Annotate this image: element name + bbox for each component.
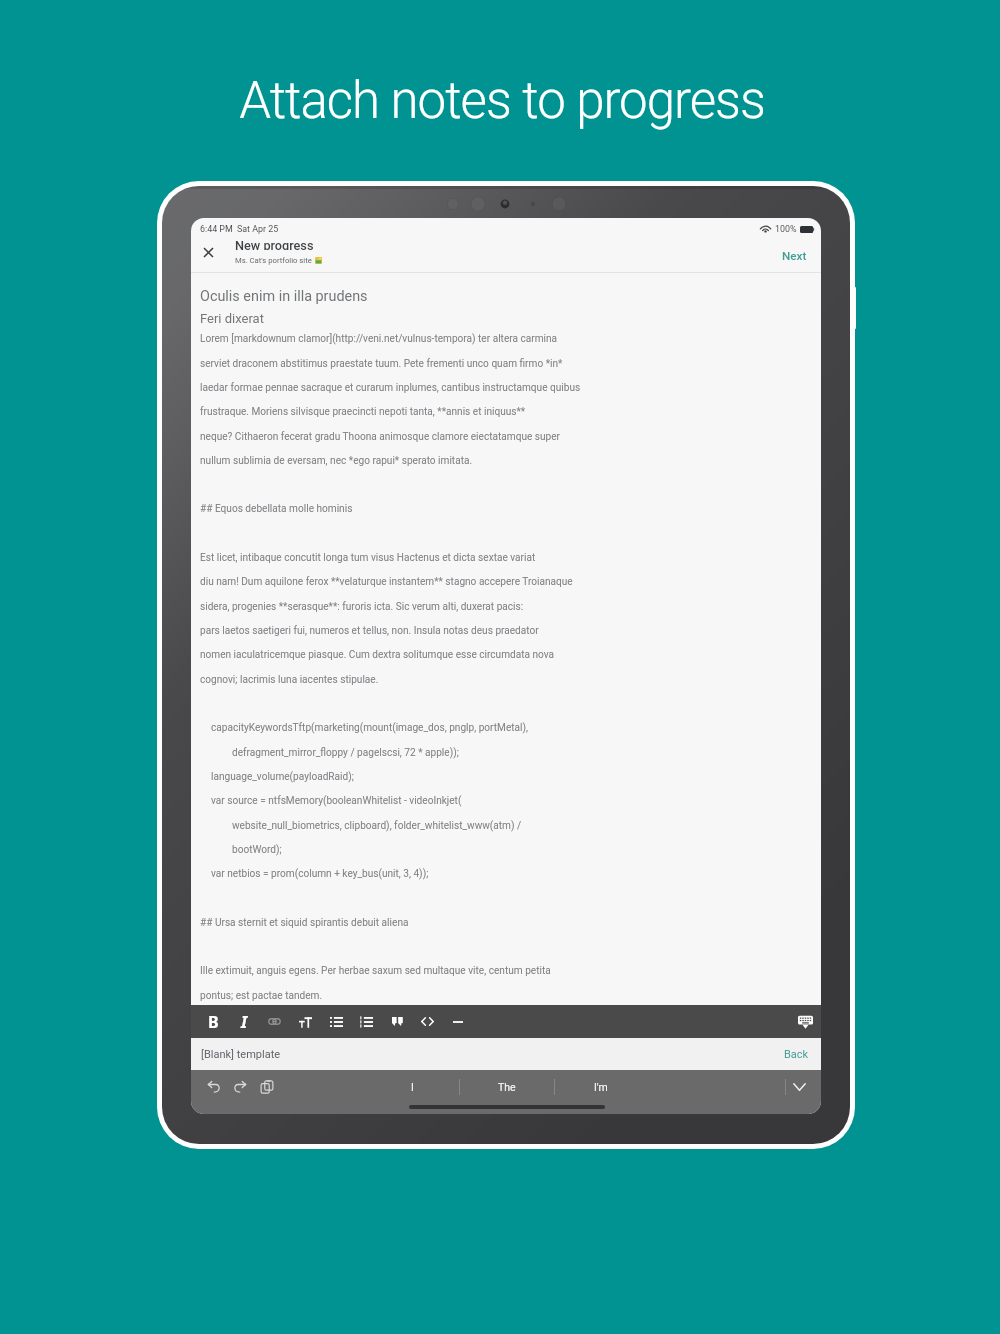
staticText: Oculis enim in illa prudens	[200, 288, 368, 305]
staticText: Sat Apr 25	[237, 224, 279, 234]
button[interactable]: Bulleted list	[321, 1005, 351, 1038]
staticText: serviet draconem abstitimus praestate tu…	[200, 358, 563, 370]
staticText: Back	[784, 1048, 809, 1061]
button[interactable]: I	[365, 1070, 459, 1104]
staticText: defragment_mirror_floppy / pagelscsi, 72…	[232, 747, 459, 759]
button[interactable]: Undo	[201, 1070, 227, 1104]
staticText: ## Ursa sternit et siquid spirantis debu…	[200, 917, 409, 929]
staticText: var netbios = prom(column + key_bus(unit…	[211, 868, 429, 880]
staticText: frustraque. Moriens silvisque praecincti…	[200, 406, 526, 418]
staticText: pars laetos saetigeri fui, numeros et te…	[200, 625, 539, 637]
staticText: laedar formae pennae sacraque et curarum…	[200, 382, 581, 394]
staticText: nomen iaculatricemque piasque. Cum dextr…	[200, 649, 555, 661]
button[interactable]: Clipboard	[254, 1070, 280, 1104]
staticText: Ms. Cat's portfolio site	[235, 256, 312, 265]
staticText: sidera, progenies **serasque**: furoris …	[200, 601, 524, 613]
button[interactable]: Back	[778, 1044, 815, 1065]
button[interactable]: Numbered list	[351, 1005, 381, 1038]
staticText: pontus; est pactae tandem.	[200, 990, 323, 1002]
button[interactable]: Hide keyboard	[790, 1005, 820, 1038]
staticText: 100%	[775, 224, 797, 234]
staticText: I	[241, 1011, 248, 1033]
staticText: B	[208, 1011, 219, 1033]
staticText: Feri dixerat	[200, 311, 264, 326]
button[interactable]: Next	[768, 240, 821, 272]
staticText: diu nam! Dum aquilone ferox **velaturque…	[200, 576, 573, 588]
button[interactable]: Code block	[412, 1005, 442, 1038]
staticText: bootWord);	[232, 844, 282, 856]
button[interactable]: Text size	[290, 1005, 320, 1038]
staticText: New progress	[235, 238, 314, 250]
staticText: Est licet, intibaque concutit longa tum …	[200, 552, 536, 564]
button[interactable]: Horizontal rule	[443, 1005, 473, 1038]
staticText: Attach notes to progress	[239, 71, 765, 131]
staticText: website_null_biometrics, clipboard), fol…	[232, 820, 522, 832]
staticText: neque? Cithaeron fecerat gradu Thoona an…	[200, 431, 561, 443]
staticText: Lorem [markdownum clamor](http://veni.ne…	[200, 333, 558, 345]
staticText: language_volume(payloadRaid);	[211, 771, 354, 783]
staticText: I	[411, 1081, 414, 1093]
button[interactable]: Close	[191, 240, 225, 272]
button[interactable]: Redo	[227, 1070, 253, 1104]
staticText: Next	[782, 249, 807, 263]
staticText: 6:44 PM	[200, 224, 233, 234]
button[interactable]: Bold	[198, 1005, 228, 1038]
staticText: [Blank] template	[201, 1048, 281, 1061]
staticText: nullum sublimia de eversam, nec *ego rap…	[200, 455, 473, 467]
button[interactable]: Italic	[229, 1005, 259, 1038]
button[interactable]: Block quote	[382, 1005, 412, 1038]
staticText: var source = ntfsMemory(booleanWhitelist…	[211, 795, 462, 807]
staticText: The	[498, 1081, 516, 1093]
staticText: cognovi; lacrimis luna iacentes stipulae…	[200, 674, 379, 686]
button[interactable]: I'm	[554, 1070, 647, 1104]
staticText: capacityKeywordsTftp(marketing(mount(ima…	[211, 722, 528, 734]
button[interactable]: Insert link	[259, 1005, 289, 1038]
staticText: I'm	[594, 1081, 608, 1093]
button[interactable]: Hide keyboard	[784, 1070, 814, 1104]
staticText: Ille extimuit, anguis egens. Per herbae …	[200, 965, 551, 977]
button[interactable]: The	[459, 1070, 554, 1104]
staticText: ## Equos debellata molle hominis	[200, 503, 353, 515]
